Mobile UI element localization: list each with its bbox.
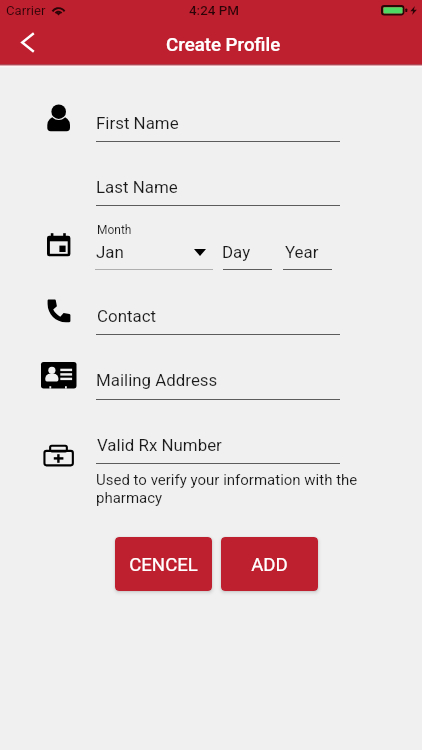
staticText: Jan (96, 242, 124, 262)
button[interactable]: Day (223, 236, 272, 270)
staticText: ADD (251, 554, 288, 576)
button[interactable]: Year (283, 236, 332, 270)
staticText: Mailing Address (96, 370, 218, 390)
staticText: Used to verify your information with the… (96, 471, 362, 507)
button[interactable]: Contact (96, 301, 340, 335)
staticText: CENCEL (129, 554, 198, 576)
staticText: Day (222, 242, 251, 262)
button[interactable]: ADD (221, 537, 318, 591)
button[interactable]: Mailing Address (96, 365, 340, 400)
staticText: Last Name (96, 177, 178, 197)
button[interactable]: Month, Jan (95, 236, 213, 270)
button[interactable]: CENCEL (115, 537, 212, 591)
button[interactable]: Valid Rx Number (96, 429, 340, 464)
button[interactable]: First Name (96, 108, 340, 142)
staticText: First Name (96, 113, 179, 133)
staticText: Create Profile (166, 34, 281, 56)
staticText: Contact (97, 306, 157, 326)
staticText: 4:24 PM (189, 3, 239, 19)
button[interactable]: Last Name (96, 172, 340, 206)
staticText: Carrier (6, 3, 46, 18)
staticText: Month (97, 223, 132, 237)
staticText: Year (285, 242, 319, 262)
staticText: Valid Rx Number (97, 435, 222, 455)
button[interactable]: Back (6, 21, 50, 63)
